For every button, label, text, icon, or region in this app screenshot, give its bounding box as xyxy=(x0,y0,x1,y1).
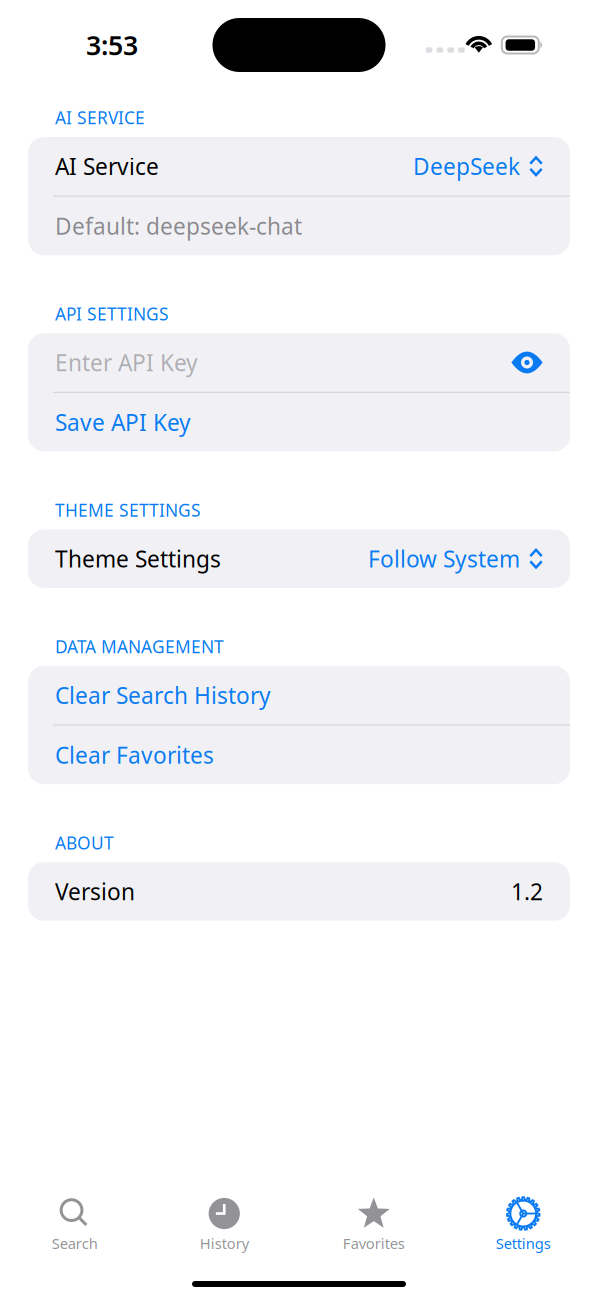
button[interactable]: Search xyxy=(0,1195,149,1253)
staticText: Clear Favorites xyxy=(55,740,214,770)
button[interactable]: History xyxy=(149,1195,299,1253)
button[interactable]: Save API Key xyxy=(28,393,570,451)
button[interactable]: Favorites xyxy=(299,1195,448,1253)
staticText: Clear Search History xyxy=(55,680,271,710)
staticText: DeepSeek xyxy=(413,151,520,181)
button[interactable]: Clear Favorites xyxy=(28,726,570,784)
staticText: Search xyxy=(52,1233,98,1253)
staticText: Follow System xyxy=(368,544,520,574)
button[interactable]: Theme Settings xyxy=(28,529,570,588)
staticText: Favorites xyxy=(343,1233,405,1253)
staticText: 1.2 xyxy=(511,876,543,906)
staticText: Settings xyxy=(496,1233,551,1253)
button[interactable]: Settings xyxy=(448,1195,598,1253)
button[interactable]: Show API key xyxy=(511,351,543,374)
staticText: AI SERVICE xyxy=(55,106,145,129)
staticText: Default: deepseek-chat xyxy=(55,211,302,241)
staticText: Enter API Key xyxy=(55,347,198,377)
staticText: ABOUT xyxy=(55,831,114,854)
button[interactable]: AI Service xyxy=(28,137,570,195)
staticText: Version xyxy=(55,876,135,906)
staticText: Save API Key xyxy=(55,407,191,437)
staticText: API SETTINGS xyxy=(55,302,169,325)
staticText: 3:53 xyxy=(86,27,138,63)
staticText: Theme Settings xyxy=(55,544,221,574)
staticText: DATA MANAGEMENT xyxy=(55,635,224,658)
staticText: AI Service xyxy=(55,151,159,181)
staticText: History xyxy=(200,1233,249,1253)
button[interactable]: Clear Search History xyxy=(28,666,570,724)
staticText: THEME SETTINGS xyxy=(55,498,201,521)
